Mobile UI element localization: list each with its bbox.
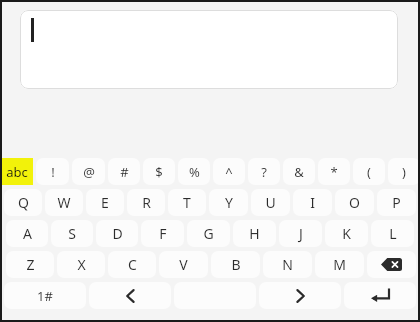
button[interactable]: G: [187, 220, 230, 247]
staticText: (: [367, 163, 371, 181]
button[interactable]: %: [178, 158, 210, 185]
staticText: E: [101, 193, 109, 212]
button[interactable]: [20, 10, 398, 89]
staticText: #: [120, 163, 129, 181]
staticText: %: [189, 163, 200, 181]
staticText: Z: [26, 255, 35, 274]
staticText: J: [299, 224, 303, 243]
button[interactable]: L: [371, 220, 414, 247]
button[interactable]: C: [108, 251, 156, 278]
staticText: X: [77, 255, 86, 274]
staticText: T: [183, 193, 191, 212]
button[interactable]: R: [127, 189, 165, 216]
button[interactable]: Enter: [344, 282, 416, 309]
staticText: C: [128, 255, 137, 274]
button[interactable]: D: [96, 220, 138, 247]
button[interactable]: U: [251, 189, 290, 216]
button[interactable]: Y: [209, 189, 248, 216]
staticText: L: [389, 224, 397, 243]
button[interactable]: W: [45, 189, 83, 216]
button[interactable]: ?: [248, 158, 280, 185]
button[interactable]: @: [72, 158, 105, 185]
staticText: A: [23, 224, 32, 243]
staticText: K: [342, 224, 351, 243]
button[interactable]: T: [168, 189, 206, 216]
button[interactable]: #: [108, 158, 140, 185]
staticText: D: [112, 224, 123, 243]
staticText: $: [155, 163, 163, 181]
button[interactable]: S: [51, 220, 93, 247]
staticText: N: [282, 255, 293, 274]
staticText: M: [333, 255, 346, 274]
staticText: &: [294, 163, 304, 181]
staticText: ?: [261, 163, 267, 181]
button[interactable]: ^: [213, 158, 245, 185]
staticText: O: [349, 193, 360, 212]
staticText: B: [231, 255, 241, 274]
staticText: *: [330, 163, 338, 181]
staticText: !: [51, 163, 55, 181]
button[interactable]: M: [315, 251, 364, 278]
button[interactable]: V: [159, 251, 208, 278]
staticText: ): [402, 163, 406, 181]
staticText: Y: [225, 193, 233, 212]
button[interactable]: Z: [6, 251, 54, 278]
button[interactable]: Backspace: [367, 251, 416, 278]
staticText: P: [392, 193, 401, 212]
button[interactable]: &: [283, 158, 315, 185]
button[interactable]: J: [279, 220, 322, 247]
button[interactable]: *: [318, 158, 350, 185]
button[interactable]: P: [377, 189, 416, 216]
button[interactable]: B: [211, 251, 260, 278]
button[interactable]: N: [263, 251, 312, 278]
button[interactable]: (: [353, 158, 385, 185]
button[interactable]: O: [335, 189, 374, 216]
button[interactable]: I: [293, 189, 332, 216]
staticText: abc: [6, 163, 28, 181]
staticText: W: [57, 193, 71, 212]
button[interactable]: Q: [4, 189, 42, 216]
button[interactable]: K: [325, 220, 368, 247]
button[interactable]: abc: [0, 158, 33, 185]
button[interactable]: $: [143, 158, 175, 185]
staticText: V: [179, 255, 188, 274]
button[interactable]: Move cursor left: [89, 282, 171, 309]
button[interactable]: A: [6, 220, 48, 247]
staticText: G: [203, 224, 214, 243]
staticText: F: [159, 224, 167, 243]
staticText: I: [310, 193, 315, 212]
button[interactable]: !: [36, 158, 69, 185]
button[interactable]: X: [57, 251, 105, 278]
staticText: S: [68, 224, 76, 243]
staticText: ^: [225, 163, 233, 181]
button[interactable]: H: [233, 220, 276, 247]
staticText: H: [249, 224, 260, 243]
staticText: 1#: [37, 287, 53, 305]
staticText: Q: [18, 193, 29, 212]
staticText: R: [142, 193, 151, 212]
button[interactable]: 1#: [4, 282, 86, 309]
button[interactable]: E: [86, 189, 124, 216]
staticText: @: [83, 163, 95, 181]
staticText: U: [265, 193, 276, 212]
button[interactable]: F: [141, 220, 184, 247]
button[interactable]: ): [388, 158, 420, 185]
button[interactable]: Move cursor right: [259, 282, 341, 309]
